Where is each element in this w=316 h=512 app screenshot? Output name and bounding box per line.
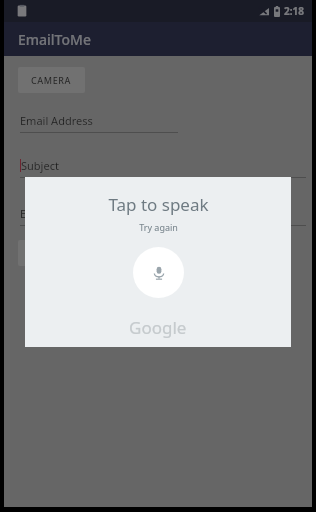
button[interactable]: Subject xyxy=(4,158,312,178)
button[interactable]: Email Body xyxy=(4,206,312,226)
button[interactable]: Email Address xyxy=(4,113,312,133)
button[interactable]: SEND xyxy=(18,240,70,266)
staticText: Email Body xyxy=(20,206,78,221)
staticText: Google xyxy=(129,316,187,339)
button[interactable]: Tap to speak xyxy=(25,177,291,347)
button[interactable]: Tap to speak xyxy=(133,247,184,298)
staticText: Try again xyxy=(139,221,178,233)
button[interactable]: CAMERA xyxy=(18,67,85,93)
staticText: Tap to speak xyxy=(108,193,209,216)
staticText: Email Address xyxy=(20,113,93,128)
staticText: CAMERA xyxy=(31,74,72,86)
staticText: 2:18 xyxy=(284,4,304,18)
staticText: EmailToMe xyxy=(18,30,91,49)
staticText: Subject xyxy=(21,158,59,173)
